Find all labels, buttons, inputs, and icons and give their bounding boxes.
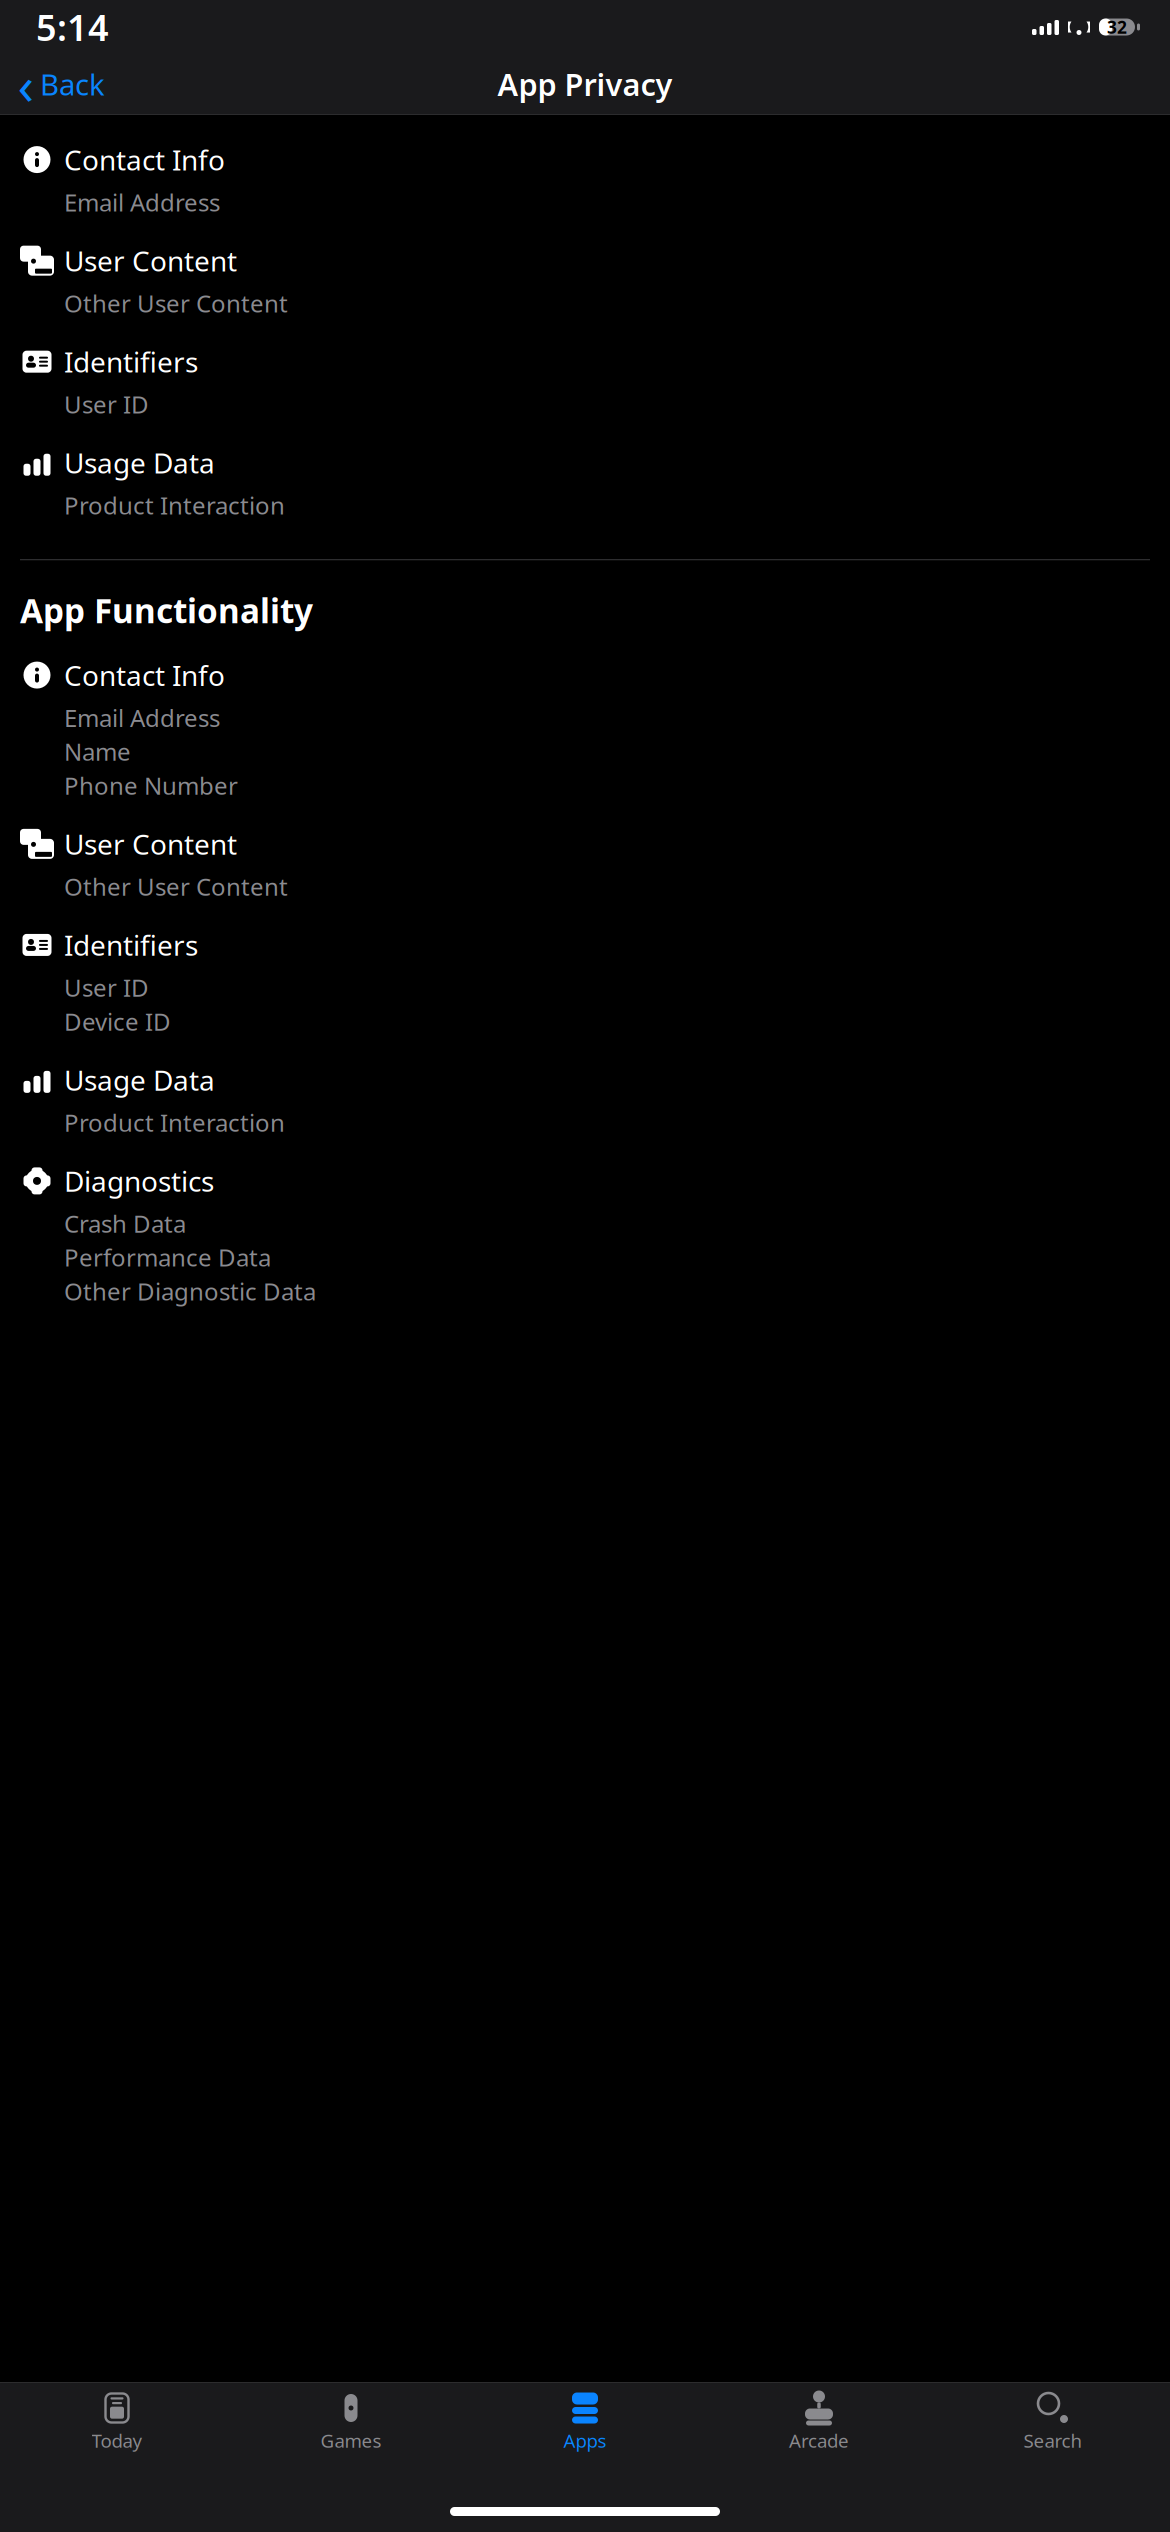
- staticText: Back: [40, 64, 105, 103]
- button[interactable]: Games: [234, 2383, 468, 2459]
- staticText: Email Address: [64, 702, 220, 734]
- staticText: Other User Content: [64, 287, 288, 319]
- staticText: Other Diagnostic Data: [64, 1275, 316, 1307]
- staticText: Identifiers: [64, 926, 198, 963]
- button[interactable]: ‹: [6, 56, 117, 111]
- staticText: Crash Data: [64, 1207, 186, 1239]
- button[interactable]: Today: [0, 2383, 234, 2459]
- staticText: App Privacy: [497, 64, 672, 104]
- staticText: Games: [320, 2428, 381, 2453]
- staticText: 5:14: [36, 3, 109, 51]
- staticText: ‹: [17, 49, 34, 119]
- staticText: App Functionality: [20, 588, 313, 632]
- staticText: User ID: [64, 971, 149, 1003]
- staticText: Apps: [563, 2428, 606, 2453]
- button[interactable]: Arcade: [702, 2383, 936, 2459]
- staticText: Today: [91, 2428, 142, 2453]
- button[interactable]: Apps: [468, 2383, 702, 2459]
- staticText: Usage Data: [64, 444, 215, 481]
- staticText: Device ID: [64, 1005, 171, 1037]
- staticText: Email Address: [64, 186, 220, 218]
- button[interactable]: Search: [936, 2383, 1170, 2459]
- staticText: Diagnostics: [64, 1162, 214, 1199]
- staticText: Product Interaction: [64, 1106, 285, 1138]
- staticText: User ID: [64, 388, 149, 420]
- staticText: User Content: [64, 242, 237, 279]
- staticText: Phone Number: [64, 769, 238, 801]
- staticText: Performance Data: [64, 1241, 271, 1273]
- staticText: Arcade: [789, 2428, 849, 2453]
- staticText: User Content: [64, 825, 237, 862]
- staticText: Product Interaction: [64, 489, 285, 521]
- staticText: Search: [1023, 2428, 1082, 2453]
- staticText: Name: [64, 735, 131, 767]
- staticText: Other User Content: [64, 870, 288, 902]
- staticText: Contact Info: [64, 656, 225, 694]
- staticText: Usage Data: [64, 1061, 215, 1098]
- staticText: Identifiers: [64, 343, 198, 380]
- staticText: Contact Info: [64, 141, 225, 178]
- staticText: 32: [1107, 15, 1127, 38]
